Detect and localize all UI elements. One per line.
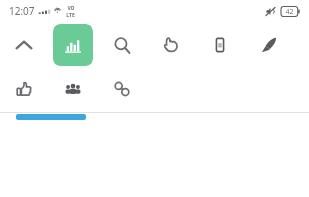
button[interactable]: Like	[4, 68, 44, 110]
button[interactable]: Groups	[53, 68, 93, 110]
button[interactable]: Device	[200, 24, 240, 66]
button[interactable]: Boost	[249, 24, 289, 66]
button[interactable]: Collapse	[4, 24, 44, 66]
staticText: 42	[285, 7, 294, 17]
button[interactable]: Statistics	[53, 24, 93, 66]
button[interactable]: Selected tab	[16, 114, 86, 120]
button[interactable]: Link	[102, 68, 142, 110]
button[interactable]: Search	[102, 24, 142, 66]
staticText: LTE	[66, 12, 75, 17]
button[interactable]: Tap	[151, 24, 191, 66]
staticText: 12:07	[9, 4, 35, 18]
staticText: VO	[67, 5, 75, 12]
